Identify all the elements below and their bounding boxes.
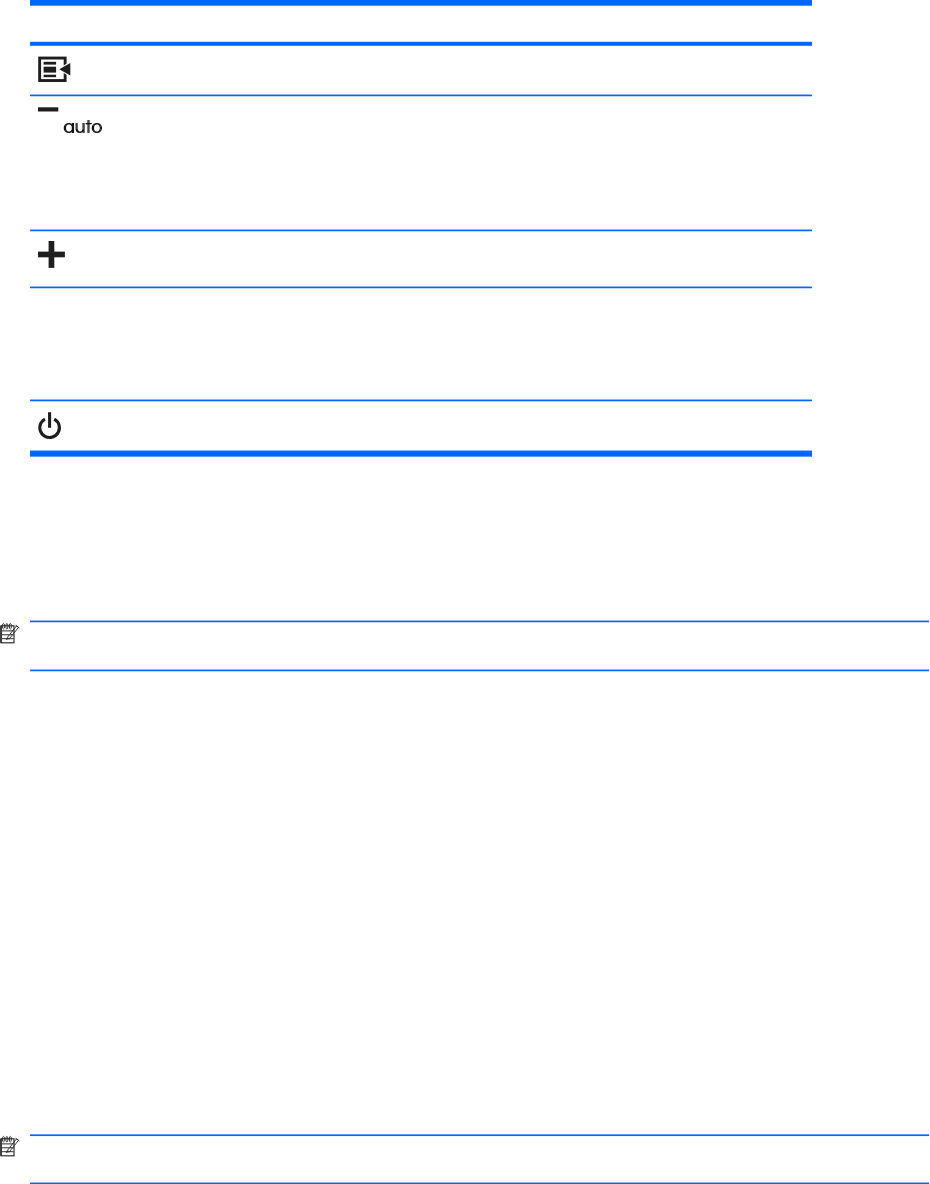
button[interactable]: Increase screen brightness	[38, 241, 66, 269]
other: Note	[0, 623, 21, 644]
button[interactable]: Power	[38, 411, 63, 440]
button[interactable]: Switch screen image	[38, 56, 71, 83]
button[interactable]: Decrease screen brightness, auto	[38, 106, 102, 136]
other: Note	[0, 1136, 21, 1157]
staticText: auto	[64, 117, 103, 137]
staticText: auto	[63, 117, 102, 137]
